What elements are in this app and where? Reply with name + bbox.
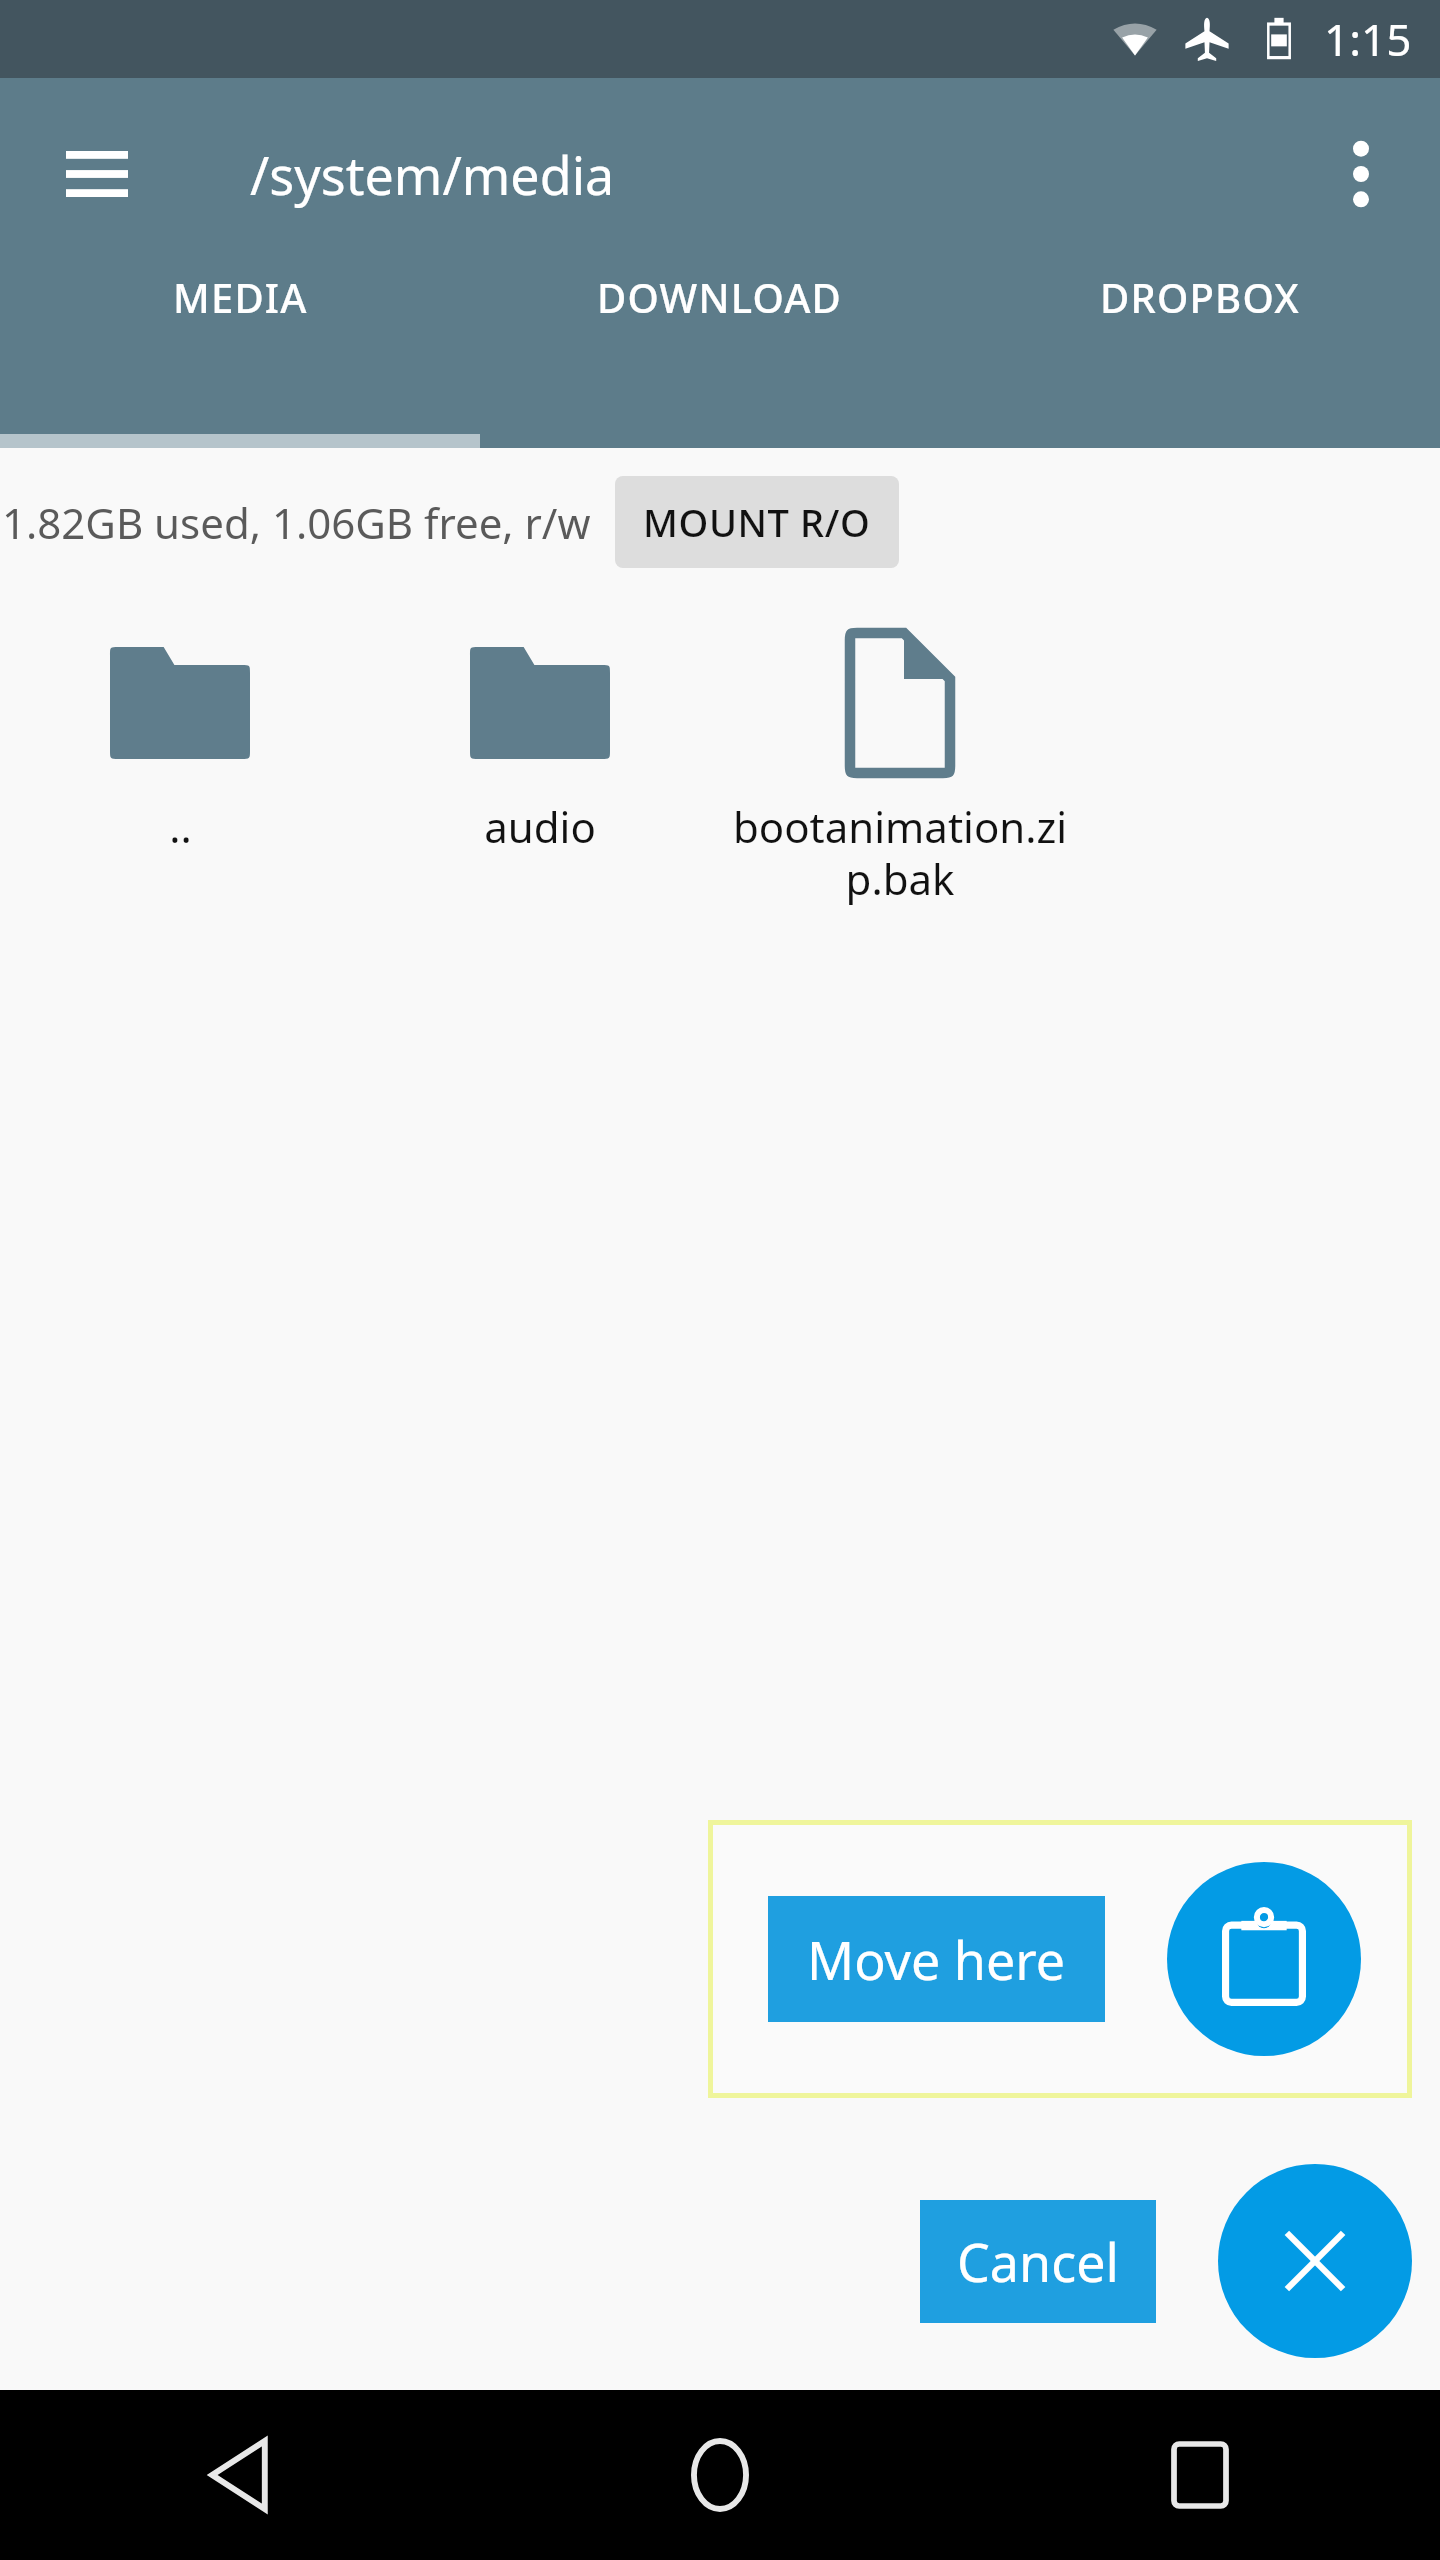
staticText: 1.82GB used, 1.06GB free, r/w xyxy=(2,494,591,551)
button[interactable]: Back xyxy=(0,2390,480,2560)
staticText: bootanimation.zip.bak xyxy=(730,798,1070,907)
button[interactable]: MEDIA xyxy=(0,270,480,324)
staticText: Cancel xyxy=(957,2226,1119,2297)
staticText: MOUNT R/O xyxy=(643,496,871,548)
button[interactable]: DROPBOX xyxy=(960,270,1440,324)
button[interactable]: audio xyxy=(360,628,720,855)
button[interactable]: Home xyxy=(480,2390,960,2560)
button[interactable]: Open navigation drawer xyxy=(42,119,152,229)
button[interactable]: Move here xyxy=(713,1825,1407,2093)
button[interactable]: Paste xyxy=(1167,1862,1361,2056)
staticText: 1:15 xyxy=(1324,9,1412,69)
button[interactable]: DOWNLOAD xyxy=(480,270,960,324)
button[interactable]: Cancel xyxy=(1218,2164,1412,2358)
staticText: /system/media xyxy=(250,139,615,210)
staticText: MEDIA xyxy=(173,270,308,324)
button[interactable]: .. xyxy=(0,628,360,855)
staticText: DOWNLOAD xyxy=(597,270,843,324)
staticText: .. xyxy=(169,798,192,855)
staticText: audio xyxy=(484,798,596,855)
button[interactable]: More options xyxy=(1306,119,1416,229)
button[interactable]: bootanimation.zip.bak xyxy=(720,628,1080,907)
button[interactable]: Move here xyxy=(768,1896,1105,2022)
staticText: DROPBOX xyxy=(1100,270,1300,324)
button[interactable]: Recents xyxy=(960,2390,1440,2560)
staticText: Move here xyxy=(807,1924,1066,1995)
button[interactable]: MOUNT R/O xyxy=(615,476,899,568)
button[interactable]: Cancel xyxy=(920,2200,1156,2323)
